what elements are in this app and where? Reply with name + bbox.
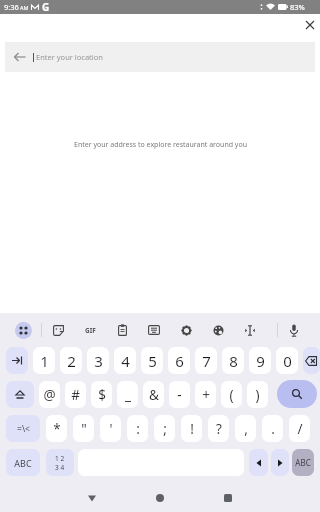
staticText: @ (43, 386, 56, 404)
staticText: - (177, 386, 182, 404)
button[interactable]: GIF (74, 314, 106, 346)
staticText: ! (190, 420, 194, 438)
button[interactable] (148, 486, 172, 510)
button[interactable] (138, 314, 170, 346)
staticText: ' (109, 420, 113, 438)
staticText: ) (255, 386, 260, 404)
button[interactable] (202, 314, 234, 346)
staticText: + (202, 386, 210, 404)
button[interactable]: ! (181, 415, 202, 442)
button[interactable]: " (73, 415, 94, 442)
staticText: Enter your address to explore restaurant… (74, 140, 247, 150)
button[interactable]: _ (117, 381, 138, 408)
staticText: # (71, 386, 80, 404)
staticText: & (149, 386, 159, 404)
button[interactable] (6, 347, 28, 374)
button[interactable]: @ (39, 381, 60, 408)
staticText: ABC (14, 457, 32, 469)
staticText: 83% (290, 2, 305, 12)
staticText: =\< (17, 423, 30, 435)
button[interactable]: 9 (249, 347, 271, 374)
button[interactable] (15, 322, 32, 339)
button[interactable] (277, 380, 317, 408)
staticText: $ (98, 386, 106, 404)
staticText: _ (125, 386, 131, 404)
button[interactable]: 7 (195, 347, 217, 374)
button[interactable]: Enter your location (5, 42, 315, 72)
staticText: 9 (256, 351, 265, 371)
button[interactable]: + (195, 381, 216, 408)
button[interactable] (278, 314, 310, 346)
button[interactable] (249, 449, 268, 476)
button[interactable]: ' (100, 415, 121, 442)
button[interactable]: . (262, 415, 283, 442)
staticText: 1 2 (55, 454, 65, 463)
staticText: 2 (67, 351, 76, 371)
staticText: 6 (175, 351, 184, 371)
staticText: * (53, 420, 61, 438)
button[interactable]: 8 (222, 347, 244, 374)
button[interactable]: ( (221, 381, 242, 408)
button[interactable] (170, 314, 202, 346)
button[interactable]: & (143, 381, 164, 408)
staticText: 0 (283, 351, 292, 371)
staticText: / (297, 420, 303, 438)
staticText: ( (229, 386, 234, 404)
button[interactable]: , (235, 415, 256, 442)
staticText: " (81, 420, 87, 438)
staticText: , (244, 420, 248, 438)
staticText: 9:36 (4, 2, 19, 12)
staticText: . (271, 420, 275, 438)
button[interactable]: ABC (292, 449, 314, 476)
staticText: 1 (40, 351, 49, 371)
staticText: : (136, 420, 140, 438)
button[interactable] (305, 20, 314, 29)
button[interactable]: ; (154, 415, 175, 442)
button[interactable] (6, 381, 34, 408)
staticText: ; (163, 420, 167, 438)
button[interactable]: 6 (168, 347, 190, 374)
button[interactable]: 4 (114, 347, 136, 374)
button[interactable]: 1 (33, 347, 55, 374)
button[interactable]: ABC (6, 449, 40, 476)
button[interactable]: : (127, 415, 148, 442)
staticText: 3 4 (55, 463, 65, 472)
staticText: Enter your location (36, 52, 103, 62)
button[interactable]: 5 (141, 347, 163, 374)
staticText: 5 (148, 351, 157, 371)
staticText: 8 (229, 351, 238, 371)
staticText: AM (20, 4, 29, 11)
button[interactable]: 3 (87, 347, 109, 374)
button[interactable]: - (169, 381, 190, 408)
button[interactable]: 1 2 (46, 449, 74, 476)
staticText: ? (216, 420, 222, 438)
button[interactable]: 2 (60, 347, 82, 374)
staticText: 4 (121, 351, 130, 371)
staticText: G (42, 0, 50, 14)
button[interactable] (42, 314, 74, 346)
button[interactable]: 0 (276, 347, 298, 374)
staticText: 7 (202, 351, 211, 371)
button[interactable] (303, 347, 320, 374)
button[interactable] (234, 314, 266, 346)
staticText: ABC (295, 457, 311, 468)
staticText: GIF (85, 326, 96, 335)
button[interactable] (271, 449, 289, 476)
button[interactable] (216, 486, 240, 510)
button[interactable]: * (46, 415, 67, 442)
button[interactable]: / (289, 415, 310, 442)
button[interactable] (106, 314, 138, 346)
button[interactable]: ) (247, 381, 268, 408)
button[interactable]: ? (208, 415, 229, 442)
button[interactable] (80, 486, 104, 510)
button[interactable]: # (65, 381, 86, 408)
staticText: 3 (94, 351, 103, 371)
button[interactable]: $ (91, 381, 112, 408)
button[interactable]: =\< (6, 415, 40, 442)
